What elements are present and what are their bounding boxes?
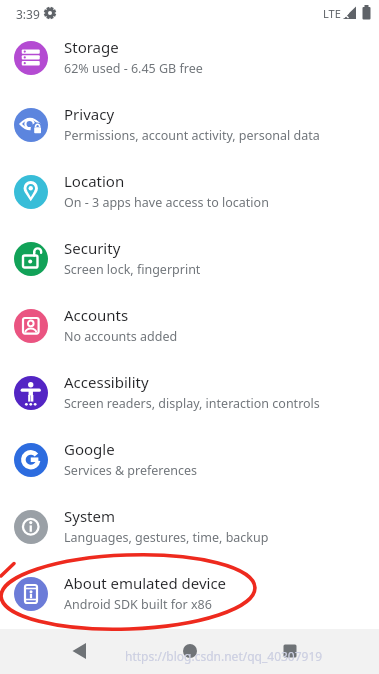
button[interactable] (0, 629, 127, 674)
staticText: About emulated device (64, 573, 227, 593)
button[interactable]: Google (0, 426, 379, 493)
staticText: 3:39 (16, 6, 40, 22)
staticText: LTE (323, 6, 341, 21)
staticText: Storage (64, 37, 119, 57)
staticText: Privacy (64, 104, 115, 124)
staticText: Languages, gestures, time, backup (64, 529, 269, 546)
button[interactable]: Storage (0, 24, 379, 91)
staticText: Accessibility (64, 372, 149, 392)
staticText: Screen lock, fingerprint (64, 261, 201, 278)
button[interactable]: Location (0, 158, 379, 225)
staticText: 62% used - 6.45 GB free (64, 60, 203, 77)
staticText: Location (64, 171, 125, 191)
button[interactable]: Accessibility (0, 359, 379, 426)
button[interactable] (253, 629, 379, 674)
staticText: Google (64, 439, 115, 459)
staticText: Permissions, account activity, personal … (64, 127, 320, 144)
staticText: On - 3 apps have access to location (64, 194, 269, 211)
staticText: Services & preferences (64, 462, 198, 479)
staticText: No accounts added (64, 328, 178, 345)
button[interactable]: Privacy (0, 91, 379, 158)
staticText: System (64, 506, 115, 526)
button[interactable]: Security (0, 225, 379, 292)
staticText: Android SDK built for x86 (64, 596, 212, 613)
button[interactable] (127, 629, 253, 674)
staticText: Security (64, 238, 121, 258)
button[interactable]: About emulated device (0, 560, 379, 627)
button[interactable]: System (0, 493, 379, 560)
staticText: https://blog.csdn.net/qq_40307919 (125, 648, 323, 664)
staticText: Screen readers, display, interaction con… (64, 395, 320, 412)
button[interactable]: Accounts (0, 292, 379, 359)
staticText: Accounts (64, 305, 129, 325)
